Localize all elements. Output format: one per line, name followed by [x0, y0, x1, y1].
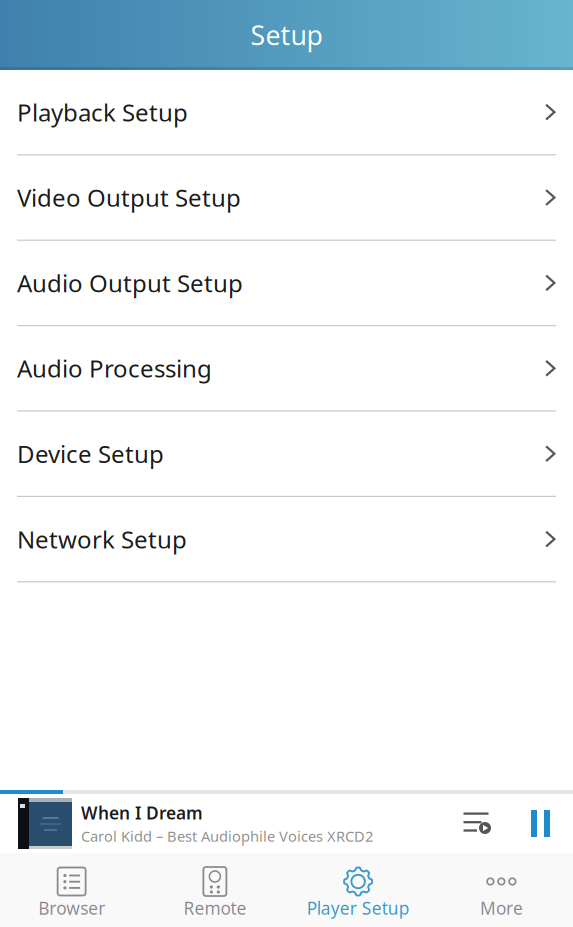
button[interactable]: Audio Output Setup	[0, 241, 573, 326]
button[interactable]: Play queue	[453, 800, 501, 847]
button[interactable]: Playback Setup	[0, 70, 573, 155]
staticText: Audio Output Setup	[17, 267, 243, 299]
staticText: Playback Setup	[17, 96, 188, 128]
button[interactable]: When I Dream	[0, 794, 373, 853]
button[interactable]: Pause	[501, 800, 573, 847]
staticText: Audio Processing	[17, 352, 212, 384]
staticText: Video Output Setup	[17, 182, 241, 213]
button[interactable]: Video Output Setup	[0, 155, 573, 241]
staticText: Carol Kidd – Best Audiophile Voices XRCD…	[81, 826, 373, 846]
staticText: Remote	[183, 896, 246, 919]
button[interactable]: Player Setup	[286, 853, 430, 927]
staticText: More	[480, 896, 523, 919]
button[interactable]: Audio Processing	[0, 326, 573, 412]
button[interactable]: Remote	[143, 853, 286, 927]
staticText: Player Setup	[307, 896, 410, 919]
button[interactable]: Browser	[0, 853, 143, 927]
button[interactable]: Device Setup	[0, 412, 573, 497]
staticText: Device Setup	[17, 438, 164, 470]
button[interactable]: More	[430, 853, 573, 927]
staticText: Network Setup	[17, 523, 187, 555]
staticText: Browser	[38, 896, 105, 919]
staticText: When I Dream	[81, 801, 203, 824]
button[interactable]: Network Setup	[0, 497, 573, 582]
staticText: Setup	[250, 17, 322, 53]
